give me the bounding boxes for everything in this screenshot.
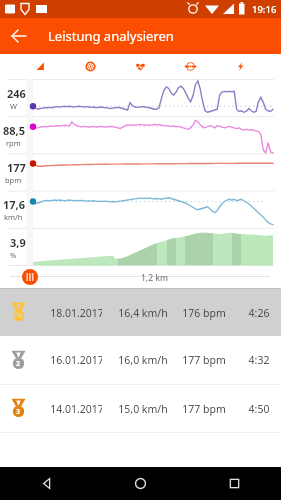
button[interactable]: Speed <box>65 54 115 79</box>
button[interactable]: Back <box>0 18 48 54</box>
button[interactable]: Cadence <box>165 54 215 79</box>
staticText: bpm <box>5 175 22 185</box>
staticText: 14.01.2017 <box>50 402 102 416</box>
staticText: % <box>10 250 17 260</box>
staticText: PR <box>14 311 23 321</box>
staticText: 1,2 km <box>141 272 169 284</box>
staticText: 88,5 <box>3 123 26 138</box>
staticText: 176 bpm <box>180 306 228 320</box>
staticText: 16,4 km/h <box>117 306 169 320</box>
staticText: 2 <box>16 359 21 369</box>
staticText: 4:50 <box>242 402 276 416</box>
button[interactable]: 2 <box>0 336 281 384</box>
staticText: 18.01.2017 <box>50 306 102 320</box>
staticText: 177 bpm <box>180 402 228 416</box>
staticText: 246 <box>7 86 26 101</box>
staticText: km/h <box>4 212 23 222</box>
staticText: rpm <box>6 138 21 148</box>
button[interactable]: Heart rate <box>115 54 165 79</box>
button[interactable]: Back <box>0 467 93 500</box>
button[interactable]: PR <box>0 289 281 336</box>
staticText: 4:32 <box>242 353 276 367</box>
button[interactable]: Power <box>215 54 265 79</box>
staticText: 4:26 <box>242 306 276 320</box>
staticText: 3 <box>16 407 21 417</box>
staticText: 3,9 <box>10 235 26 250</box>
staticText: 17,6 <box>3 197 26 212</box>
staticText: 177 bpm <box>180 353 228 367</box>
staticText: 15,0 km/h <box>117 402 169 416</box>
button[interactable]: Laps <box>22 269 38 285</box>
staticText: 16.01.2017 <box>50 353 102 367</box>
staticText: 177 <box>7 160 26 175</box>
staticText: Leistung analysieren <box>48 27 174 45</box>
staticText: W <box>10 101 17 111</box>
staticText: 19:16 <box>252 3 277 16</box>
button[interactable]: 3 <box>0 385 281 432</box>
button[interactable]: Home <box>93 467 187 500</box>
button[interactable]: Elevation <box>16 54 65 79</box>
staticText: 16,0 km/h <box>117 353 169 367</box>
button[interactable]: Recents <box>187 467 281 500</box>
